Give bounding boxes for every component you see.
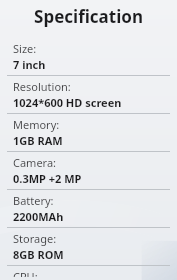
- button[interactable]: CPU:: [0, 266, 177, 280]
- staticText: Battery:: [13, 193, 54, 208]
- staticText: CPU:: [13, 269, 38, 277]
- staticText: 8GB ROM: [13, 247, 64, 262]
- staticText: Camera:: [13, 155, 57, 170]
- button[interactable]: Camera:: [0, 152, 177, 189]
- staticText: Storage:: [13, 231, 57, 246]
- staticText: 0.3MP +2 MP: [13, 171, 82, 186]
- staticText: Resolution:: [13, 79, 71, 94]
- staticText: Size:: [13, 41, 37, 56]
- staticText: 7 inch: [13, 57, 46, 72]
- staticText: Specification: [34, 5, 143, 28]
- button[interactable]: Battery:: [0, 190, 177, 227]
- staticText: 1024*600 HD screen: [13, 95, 122, 110]
- button[interactable]: Storage:: [0, 228, 177, 265]
- button[interactable]: Size:: [0, 38, 177, 75]
- staticText: Memory:: [13, 117, 60, 132]
- staticText: 2200MAh: [13, 209, 64, 224]
- button[interactable]: Resolution:: [0, 76, 177, 113]
- staticText: 1GB RAM: [13, 133, 63, 148]
- button[interactable]: Memory:: [0, 114, 177, 151]
